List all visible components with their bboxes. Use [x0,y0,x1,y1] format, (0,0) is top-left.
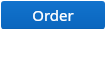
staticText: Order [32,5,74,25]
button[interactable]: Order [1,1,105,29]
